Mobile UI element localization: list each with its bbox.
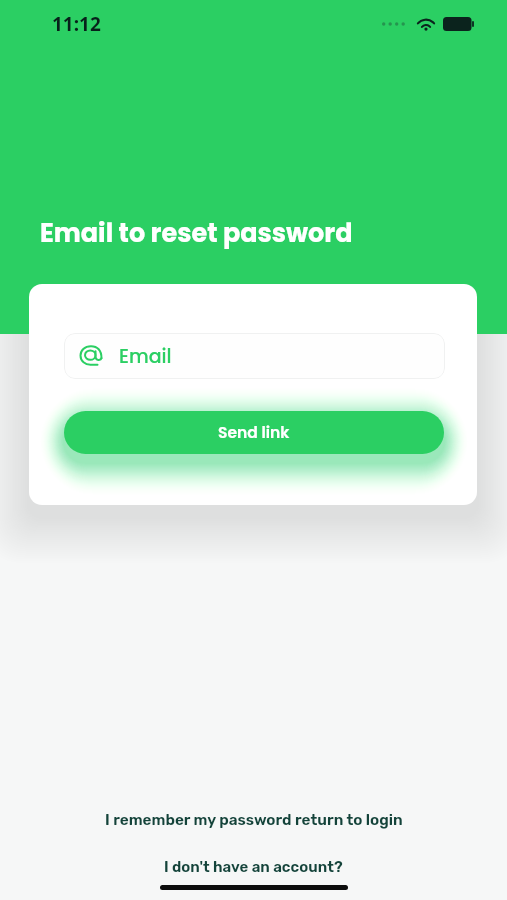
staticText: Send link <box>218 422 290 444</box>
other: Email <box>79 344 103 368</box>
staticText: I don't have an account? <box>164 858 343 876</box>
staticText: Email to reset password <box>40 215 353 251</box>
button[interactable]: I remember my password return to login <box>0 811 507 829</box>
button[interactable]: Send link <box>64 411 444 454</box>
staticText: I remember my password return to login <box>105 811 403 829</box>
button[interactable]: Email <box>64 333 445 379</box>
staticText: 11:12 <box>52 11 101 37</box>
staticText: Email <box>119 343 172 370</box>
button[interactable]: I don't have an account? <box>0 858 507 876</box>
